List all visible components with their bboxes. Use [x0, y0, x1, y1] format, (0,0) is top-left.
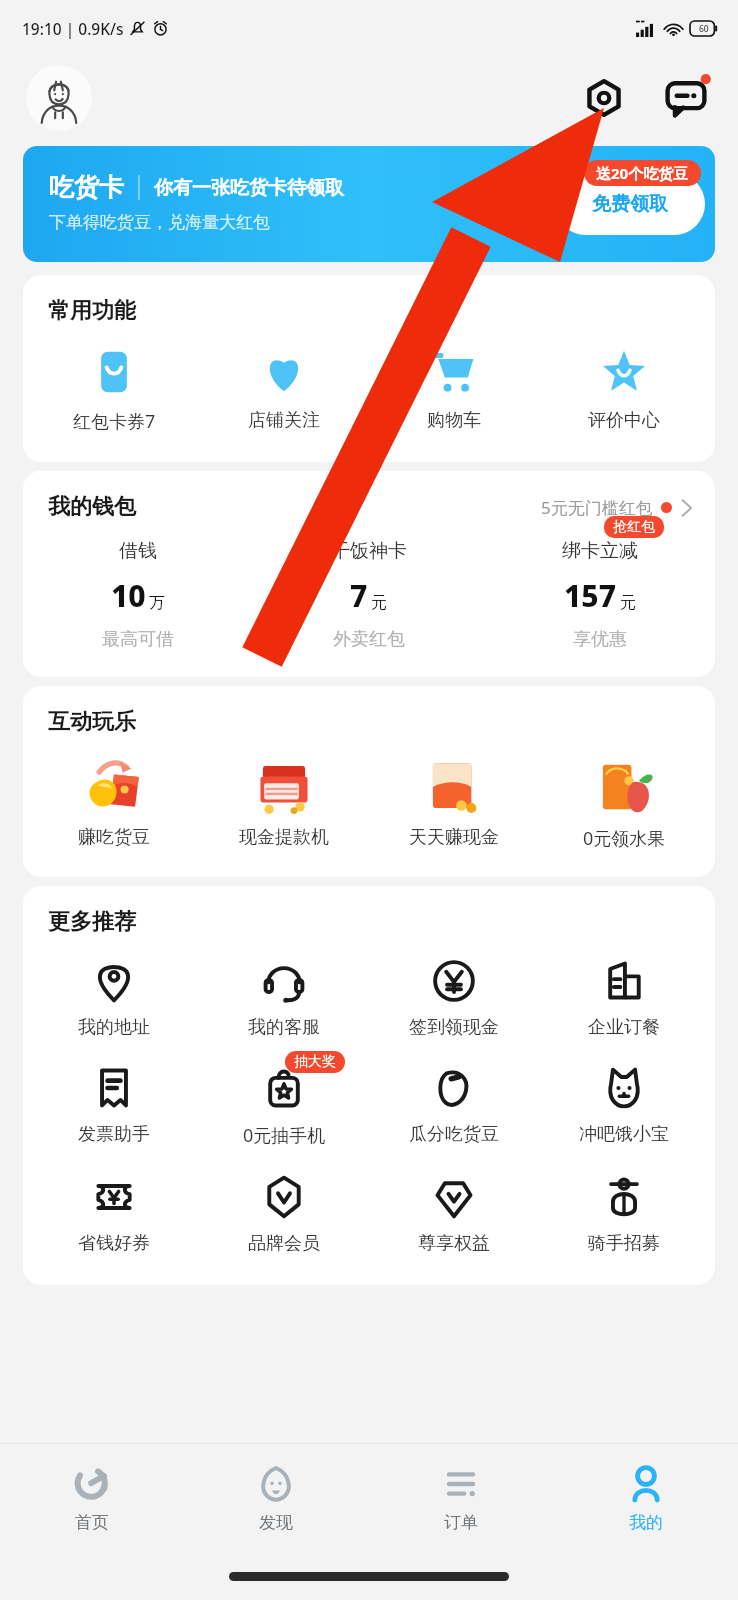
staticText: 尊享权益 [418, 1232, 490, 1255]
staticText: 元 [620, 593, 636, 613]
staticText: 评价中心 [588, 409, 660, 432]
staticText: 7 [350, 575, 368, 616]
staticText: 157 [564, 575, 617, 616]
button[interactable]: 签到领现金 [369, 958, 539, 1039]
staticText: 冲吧饿小宝 [579, 1123, 669, 1146]
staticText: 吃货卡 [49, 172, 124, 203]
staticText: 5元无门槛红包 [541, 496, 653, 519]
staticText: 干饭神卡 [331, 539, 407, 563]
button[interactable]: 红包卡券7 [29, 347, 199, 436]
button[interactable]: 干饭神卡 [253, 539, 484, 651]
staticText: 19:10 | 0.9K/s [22, 18, 124, 39]
button[interactable]: Scan [580, 74, 628, 122]
button[interactable]: 我的地址 [29, 958, 199, 1039]
button[interactable]: 店铺关注 [199, 347, 369, 434]
staticText: 享优惠 [573, 628, 627, 651]
button[interactable]: 5元无门槛红包 [541, 496, 693, 519]
staticText: 借钱 [119, 539, 157, 563]
button[interactable]: 品牌会员 [199, 1174, 369, 1255]
staticText: 绑卡立减 [562, 539, 638, 563]
staticText: 天天赚现金 [409, 826, 499, 849]
button[interactable]: 尊享权益 [369, 1174, 539, 1255]
button[interactable]: Messages [660, 72, 712, 124]
button[interactable]: 瓜分吃货豆 [369, 1065, 539, 1146]
staticText: 我的钱包 [48, 493, 136, 521]
button[interactable]: 企业订餐 [539, 958, 709, 1039]
staticText: 购物车 [427, 409, 481, 432]
staticText: 省钱好券 [78, 1232, 150, 1255]
button[interactable]: 我的客服 [199, 958, 369, 1039]
staticText: 万 [149, 593, 165, 613]
staticText: 你有一张吃货卡待领取 [154, 176, 344, 200]
staticText: 元 [371, 593, 387, 613]
staticText: 企业订餐 [588, 1016, 660, 1039]
button[interactable]: 0元领水果 [539, 756, 709, 851]
staticText: 赚吃货豆 [78, 826, 150, 849]
staticText: 更多推荐 [48, 908, 136, 936]
button[interactable]: 抽大奖 [199, 1065, 369, 1148]
button[interactable]: 免费领取 [555, 173, 705, 235]
staticText: 送20个吃货豆 [596, 163, 689, 183]
staticText: 瓜分吃货豆 [409, 1123, 499, 1146]
staticText: 抽大奖 [294, 1053, 336, 1071]
staticText: 品牌会员 [248, 1232, 320, 1255]
button[interactable]: Profile avatar [26, 65, 92, 131]
button[interactable]: 赚吃货豆 [29, 756, 199, 849]
button[interactable]: 评价中心 [539, 347, 709, 434]
staticText: 免费领取 [592, 192, 668, 216]
button[interactable]: 天天赚现金 [369, 756, 539, 849]
staticText: 我的客服 [248, 1016, 320, 1039]
button[interactable]: 绑卡立减 [484, 539, 715, 651]
button[interactable]: 购物车 [369, 347, 539, 434]
staticText: 订单 [444, 1512, 478, 1533]
staticText: 首页 [75, 1512, 109, 1533]
button[interactable]: 借钱 [23, 539, 253, 651]
staticText: 签到领现金 [409, 1016, 499, 1039]
staticText: 现金提款机 [239, 826, 329, 849]
staticText: 我的地址 [78, 1016, 150, 1039]
button[interactable]: 发票助手 [29, 1065, 199, 1146]
staticText: 常用功能 [48, 297, 136, 325]
staticText: 下单得吃货豆，兑海量大红包 [49, 212, 270, 233]
staticText: 外卖红包 [333, 628, 405, 651]
staticText: 0元抽手机 [243, 1123, 326, 1148]
button[interactable]: 订单 [368, 1444, 553, 1552]
staticText: 10 [111, 575, 146, 616]
staticText: 我的 [629, 1512, 663, 1533]
staticText: 最高可借 [102, 628, 174, 651]
staticText: 抢红包 [613, 518, 655, 536]
button[interactable]: 吃货卡 [23, 146, 715, 262]
staticText: 互动玩乐 [48, 708, 136, 736]
button[interactable]: 我的 [553, 1444, 738, 1552]
staticText: 红包卡券7 [73, 409, 156, 434]
button[interactable]: 首页 [0, 1444, 184, 1552]
staticText: 店铺关注 [248, 409, 320, 432]
staticText: 0元领水果 [583, 826, 666, 851]
staticText: 发票助手 [78, 1123, 150, 1146]
staticText: 60 [699, 23, 709, 35]
staticText: 骑手招募 [588, 1232, 660, 1255]
button[interactable]: 冲吧饿小宝 [539, 1065, 709, 1146]
button[interactable]: 发现 [184, 1444, 368, 1552]
staticText: 发现 [259, 1512, 293, 1533]
button[interactable]: 骑手招募 [539, 1174, 709, 1255]
button[interactable]: 省钱好券 [29, 1174, 199, 1255]
button[interactable]: 现金提款机 [199, 756, 369, 849]
